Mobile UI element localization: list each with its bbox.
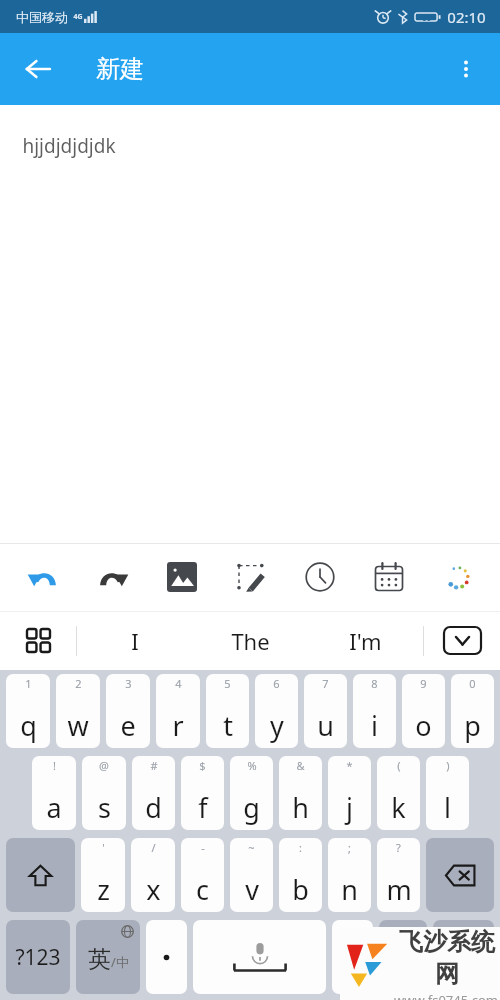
button[interactable]: # xyxy=(132,756,175,830)
button[interactable]: 6 xyxy=(255,674,298,748)
button[interactable]: ; xyxy=(328,838,371,912)
staticText: 02:10 xyxy=(447,7,486,27)
button[interactable]: Switch input language xyxy=(76,920,140,994)
button[interactable]: Space xyxy=(193,920,326,994)
staticText: 新建 xyxy=(96,54,144,84)
button[interactable]: ( xyxy=(377,756,420,830)
staticText: ! xyxy=(53,758,56,773)
button[interactable]: I'm xyxy=(308,611,423,670)
staticText: 飞沙系统网 xyxy=(394,927,500,989)
button[interactable]: Shift xyxy=(6,838,75,912)
staticText: & xyxy=(296,758,305,773)
staticText: y xyxy=(270,707,284,744)
staticText: r xyxy=(172,707,184,744)
staticText: 2 xyxy=(75,676,82,691)
staticText: /中 xyxy=(111,953,129,971)
staticText: hjjdjdjdjdk xyxy=(22,133,116,159)
button[interactable]: % xyxy=(230,756,273,830)
staticText: w xyxy=(67,707,89,744)
button[interactable]: 8 xyxy=(353,674,396,748)
button[interactable]: Calendar xyxy=(354,543,423,611)
staticText: v xyxy=(245,871,259,908)
staticText: z xyxy=(97,871,110,908)
button[interactable]: Draw xyxy=(216,543,285,611)
button[interactable]: ) xyxy=(426,756,469,830)
staticText: % xyxy=(247,758,257,773)
staticText: u xyxy=(317,707,334,744)
staticText: 5 xyxy=(224,676,231,691)
staticText: # xyxy=(150,758,158,773)
button[interactable]: hjjdjdjdjdk xyxy=(0,105,500,543)
button[interactable]: 1 xyxy=(6,674,50,748)
staticText: www.fs0745.com xyxy=(394,991,498,1000)
staticText: ? xyxy=(347,940,358,974)
button[interactable]: ! xyxy=(32,756,76,830)
staticText: b xyxy=(292,871,309,908)
button[interactable]: 0 xyxy=(451,674,494,748)
staticText: d xyxy=(145,789,162,826)
staticText: ?123 xyxy=(15,943,61,972)
staticText: p xyxy=(464,707,481,744)
staticText: 中国移动 xyxy=(16,9,68,25)
button[interactable]: 4 xyxy=(156,674,200,748)
button[interactable]: ~ xyxy=(230,838,273,912)
button[interactable]: ?123 xyxy=(6,920,70,994)
staticText: 4 xyxy=(175,676,182,691)
staticText: x xyxy=(146,871,161,908)
staticText: * xyxy=(346,758,353,773)
button[interactable]: - xyxy=(181,838,224,912)
staticText: 1 xyxy=(25,676,32,691)
button[interactable]: Hide keyboard xyxy=(424,611,500,670)
button[interactable]: 2 xyxy=(56,674,100,748)
staticText: ; xyxy=(348,840,351,855)
button[interactable]: 5 xyxy=(206,674,249,748)
button[interactable]: The xyxy=(193,611,308,670)
button[interactable]: I xyxy=(77,611,193,670)
staticText: ) xyxy=(446,758,450,773)
button[interactable]: More options xyxy=(442,45,490,93)
button[interactable]: Keyboard options xyxy=(0,611,76,670)
button[interactable]: ? xyxy=(377,838,420,912)
button[interactable]: $ xyxy=(181,756,224,830)
staticText: a xyxy=(46,789,62,826)
staticText: @ xyxy=(99,758,109,773)
staticText: ~ xyxy=(248,840,255,855)
staticText: 4G xyxy=(73,12,83,22)
staticText: I'm xyxy=(349,626,382,656)
staticText: $ xyxy=(199,758,206,773)
button[interactable]: Back xyxy=(10,41,66,97)
staticText: c xyxy=(196,871,209,908)
staticText: 0 xyxy=(469,676,476,691)
button[interactable]: ' xyxy=(81,838,125,912)
staticText: ' xyxy=(102,840,105,855)
button[interactable]: Undo xyxy=(8,543,78,611)
staticText: 99 xyxy=(422,12,432,23)
staticText: 7 xyxy=(322,676,329,691)
button[interactable]: Period xyxy=(146,920,187,994)
button[interactable]: * xyxy=(328,756,371,830)
button[interactable]: Insert image xyxy=(147,543,216,611)
staticText: s xyxy=(98,789,111,826)
button[interactable]: : xyxy=(279,838,322,912)
button[interactable]: @ xyxy=(82,756,126,830)
staticText: i xyxy=(371,707,378,744)
button[interactable]: ? xyxy=(332,920,373,994)
button[interactable]: More xyxy=(423,543,492,611)
button[interactable]: Enter xyxy=(433,920,494,994)
button[interactable]: / xyxy=(131,838,175,912)
staticText: o xyxy=(415,707,432,744)
button[interactable]: Redo xyxy=(78,543,147,611)
button[interactable]: 3 xyxy=(106,674,150,748)
staticText: 8 xyxy=(371,676,378,691)
staticText: 6 xyxy=(273,676,280,691)
staticText: f xyxy=(198,789,208,826)
staticText: / xyxy=(151,840,156,855)
button[interactable]: 7 xyxy=(304,674,347,748)
button[interactable]: & xyxy=(279,756,322,830)
button[interactable]: Backspace xyxy=(426,838,494,912)
button[interactable]: Emoji xyxy=(379,920,427,994)
button[interactable]: Reminder xyxy=(285,543,354,611)
staticText: j xyxy=(346,789,353,826)
button[interactable]: 9 xyxy=(402,674,445,748)
staticText: m xyxy=(386,871,412,908)
